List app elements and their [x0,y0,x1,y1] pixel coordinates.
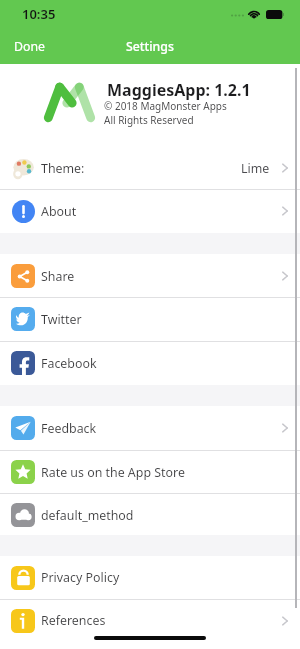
staticText: All Rights Reserved [104,113,194,127]
staticText: Settings [126,38,174,55]
staticText: Theme: [41,160,85,177]
button[interactable]: Twitter [0,297,300,341]
button[interactable]: Theme: [0,146,300,190]
button[interactable]: Rate us on the App Store [0,450,300,494]
staticText: Feedback [41,420,97,437]
staticText: 10:35 [22,5,56,23]
button[interactable]: default_method [0,494,300,536]
button[interactable]: Privacy Policy [0,556,300,599]
staticText: Facebook [41,355,97,372]
staticText: Lime [241,160,270,177]
staticText: Rate us on the App Store [41,464,185,481]
button[interactable]: Facebook [0,341,300,385]
button[interactable]: Share [0,254,300,298]
staticText: Share [41,268,75,285]
button[interactable]: About [0,189,300,233]
staticText: Privacy Policy [41,569,120,586]
staticText: Twitter [41,311,82,328]
staticText: MaggiesApp: 1.2.1 [107,79,251,101]
button[interactable]: References [0,599,300,642]
button[interactable]: Done [0,33,57,60]
button[interactable]: Feedback [0,406,300,450]
staticText: © 2018 MagMonster Apps [104,99,227,113]
staticText: About [41,203,77,220]
staticText: default_method [41,507,134,524]
staticText: References [41,612,106,629]
